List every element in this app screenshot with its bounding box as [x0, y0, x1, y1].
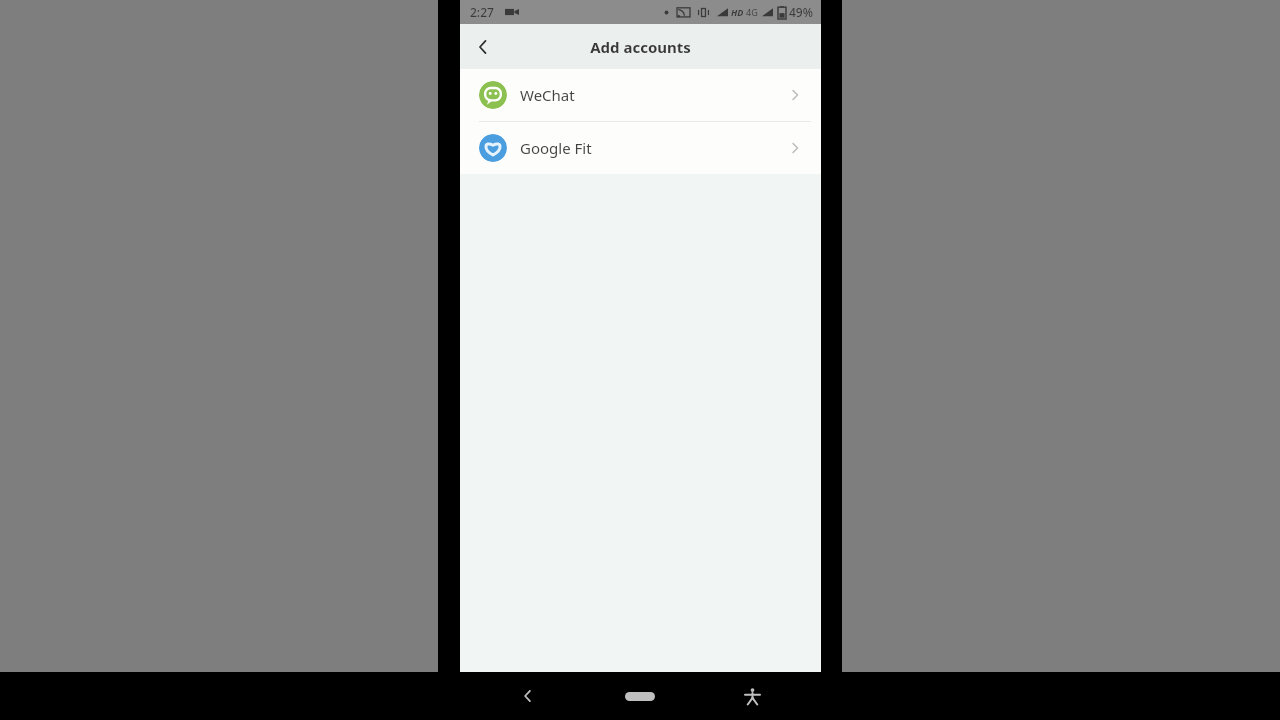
- staticText: 2:27: [470, 4, 494, 20]
- staticText: HD: [731, 6, 744, 18]
- button[interactable]: Google Fit: [460, 122, 821, 174]
- staticText: 4G: [746, 6, 758, 18]
- button[interactable]: Home: [613, 681, 667, 711]
- button[interactable]: WeChat: [460, 69, 821, 121]
- staticText: Add accounts: [590, 37, 691, 57]
- button[interactable]: Back: [460, 24, 506, 69]
- staticText: 49%: [789, 4, 813, 20]
- button[interactable]: Accessibility: [730, 674, 774, 718]
- button[interactable]: Back: [506, 674, 550, 718]
- staticText: WeChat: [520, 85, 575, 105]
- staticText: Google Fit: [520, 138, 592, 158]
